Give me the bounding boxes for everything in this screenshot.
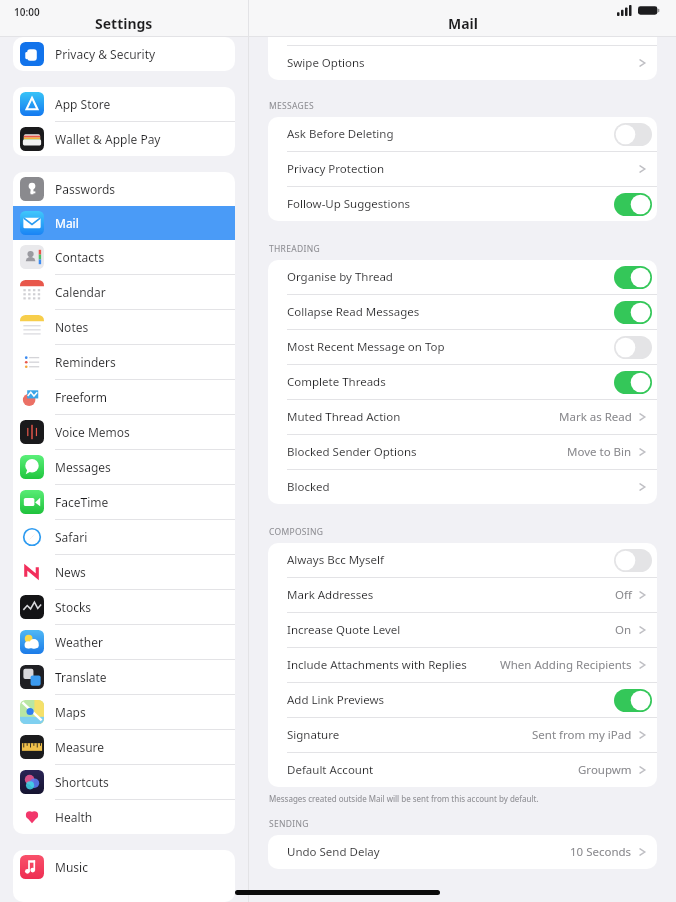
- button[interactable]: Ask Before Deleting: [268, 117, 657, 151]
- button[interactable]: Reminders: [13, 345, 235, 379]
- staticText: Voice Memos: [55, 424, 130, 440]
- staticText: Undo Send Delay: [287, 844, 380, 860]
- button[interactable]: Add Link Previews: [268, 683, 657, 717]
- staticText: Measure: [55, 739, 105, 755]
- staticText: Privacy & Security: [55, 46, 156, 62]
- staticText: Stocks: [55, 599, 92, 615]
- staticText: Sent from my iPad: [532, 727, 632, 743]
- staticText: On: [615, 622, 632, 638]
- button[interactable]: News: [13, 555, 235, 589]
- button[interactable]: Most Recent Message on Top: [268, 330, 657, 364]
- button[interactable]: Measure: [13, 730, 235, 764]
- button[interactable]: Follow-Up Suggestions: [268, 187, 657, 221]
- button[interactable]: On: [614, 193, 652, 216]
- button[interactable]: Blocked Sender Options: [268, 435, 657, 469]
- other: More: [639, 589, 646, 601]
- button[interactable]: On: [614, 266, 652, 289]
- staticText: Move to Bin: [567, 444, 632, 460]
- staticText: Notes: [55, 319, 89, 335]
- button[interactable]: FaceTime: [13, 485, 235, 519]
- button[interactable]: Increase Quote Level: [268, 613, 657, 647]
- staticText: Complete Threads: [287, 374, 386, 390]
- button[interactable]: Passwords: [13, 172, 235, 206]
- staticText: Calendar: [55, 284, 106, 300]
- button[interactable]: Notes: [13, 310, 235, 344]
- button[interactable]: Organise by Thread: [268, 260, 657, 294]
- button[interactable]: Swipe Options: [268, 46, 657, 80]
- button[interactable]: Voice Memos: [13, 415, 235, 449]
- staticText: Wallet & Apple Pay: [55, 131, 161, 147]
- staticText: Signature: [287, 727, 340, 743]
- button[interactable]: Blocked: [268, 470, 657, 504]
- other: More: [639, 163, 646, 175]
- button[interactable]: Off: [614, 549, 652, 572]
- button[interactable]: Freeform: [13, 380, 235, 414]
- staticText: Weather: [55, 634, 103, 650]
- button[interactable]: Default Account: [268, 753, 657, 787]
- button[interactable]: Safari: [13, 520, 235, 554]
- staticText: Passwords: [55, 181, 116, 197]
- button[interactable]: Off: [614, 123, 652, 146]
- button[interactable]: Always Bcc Myself: [268, 543, 657, 577]
- staticText: Default Account: [287, 762, 374, 778]
- button[interactable]: Translate: [13, 660, 235, 694]
- button[interactable]: Privacy & Security: [13, 37, 235, 71]
- other: More: [639, 659, 646, 671]
- staticText: SENDING: [269, 818, 309, 830]
- button[interactable]: Include Attachments with Replies: [268, 648, 657, 682]
- staticText: Groupwm: [578, 762, 632, 778]
- staticText: Muted Thread Action: [287, 409, 401, 425]
- button[interactable]: On: [614, 689, 652, 712]
- button[interactable]: Complete Threads: [268, 365, 657, 399]
- other: More: [639, 846, 646, 858]
- staticText: Translate: [55, 669, 107, 685]
- button[interactable]: On: [614, 301, 652, 324]
- button[interactable]: Calendar: [13, 275, 235, 309]
- staticText: Shortcuts: [55, 774, 109, 790]
- button[interactable]: Undo Send Delay: [268, 835, 657, 869]
- button[interactable]: Wallet & Apple Pay: [13, 122, 235, 156]
- staticText: News: [55, 564, 86, 580]
- button[interactable]: Muted Thread Action: [268, 400, 657, 434]
- staticText: Add Link Previews: [287, 692, 385, 708]
- staticText: 10:00: [14, 5, 40, 19]
- button[interactable]: Stocks: [13, 590, 235, 624]
- button[interactable]: Privacy Protection: [268, 152, 657, 186]
- staticText: Privacy Protection: [287, 161, 385, 177]
- staticText: Messages: [55, 459, 111, 475]
- staticText: App Store: [55, 96, 111, 112]
- button[interactable]: Mail: [13, 206, 235, 240]
- staticText: Settings: [95, 14, 153, 33]
- button[interactable]: Shortcuts: [13, 765, 235, 799]
- button[interactable]: Maps: [13, 695, 235, 729]
- staticText: Ask Before Deleting: [287, 126, 394, 142]
- staticText: COMPOSING: [269, 526, 324, 538]
- button[interactable]: Weather: [13, 625, 235, 659]
- staticText: Safari: [55, 529, 88, 545]
- button[interactable]: Mark Addresses: [268, 578, 657, 612]
- button[interactable]: Music: [13, 850, 235, 884]
- staticText: Health: [55, 809, 93, 825]
- staticText: Off: [615, 587, 632, 603]
- button[interactable]: On: [614, 371, 652, 394]
- staticText: Messages created outside Mail will be se…: [269, 793, 539, 804]
- staticText: Blocked Sender Options: [287, 444, 417, 460]
- button[interactable]: Signature: [268, 718, 657, 752]
- staticText: Most Recent Message on Top: [287, 339, 445, 355]
- button[interactable]: Health: [13, 800, 235, 834]
- staticText: Increase Quote Level: [287, 622, 401, 638]
- staticText: Reminders: [55, 354, 116, 370]
- staticText: When Adding Recipients: [500, 657, 632, 673]
- staticText: Mail: [448, 14, 478, 33]
- staticText: Organise by Thread: [287, 269, 393, 285]
- staticText: Mark as Read: [559, 409, 632, 425]
- button[interactable]: Messages: [13, 450, 235, 484]
- staticText: Mark Addresses: [287, 587, 374, 603]
- button[interactable]: Collapse Read Messages: [268, 295, 657, 329]
- other: More: [639, 481, 646, 493]
- button[interactable]: Off: [614, 336, 652, 359]
- button[interactable]: App Store: [13, 87, 235, 121]
- staticText: Collapse Read Messages: [287, 304, 420, 320]
- button[interactable]: Contacts: [13, 240, 235, 274]
- other: More: [639, 411, 646, 423]
